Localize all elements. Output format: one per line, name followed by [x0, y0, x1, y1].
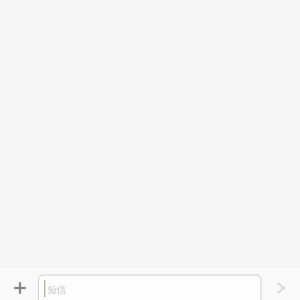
button[interactable]: 短信 [38, 275, 261, 300]
button[interactable]: Send [265, 275, 291, 300]
staticText: 短信 [48, 284, 66, 296]
button[interactable]: Attach media [7, 275, 33, 300]
